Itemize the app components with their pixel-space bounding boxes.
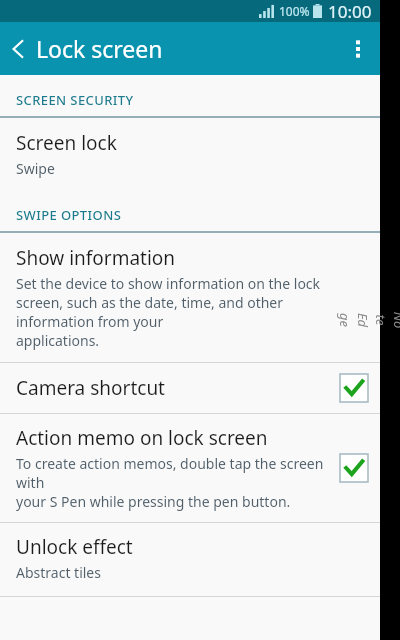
button[interactable]: Camera shortcut	[0, 363, 380, 413]
button[interactable]: Enabled	[340, 374, 368, 402]
staticText: Lock screen	[36, 33, 163, 64]
staticText: Swipe	[16, 159, 55, 178]
staticText: Abstract tiles	[16, 563, 101, 582]
staticText: Set the device to show information on th…	[16, 274, 364, 350]
staticText: Action memo on lock screen	[16, 425, 268, 451]
staticText: Screen lock	[16, 130, 117, 156]
staticText: Camera shortcut	[16, 375, 165, 401]
staticText: 10:00	[328, 0, 372, 22]
button[interactable]: More options	[336, 22, 380, 75]
button[interactable]: Navigate up	[0, 22, 36, 75]
button[interactable]: Show information	[0, 233, 380, 362]
button[interactable]: Unlock effect	[0, 523, 380, 596]
staticText: Unlock effect	[16, 534, 133, 560]
staticText: To create action memos, double tap the s…	[16, 454, 332, 511]
staticText: Show information	[16, 245, 176, 271]
button[interactable]: Screen lock	[0, 118, 380, 194]
staticText: SCREEN SECURITY	[16, 91, 134, 109]
staticText: Galaxy Note Edge	[336, 310, 400, 330]
staticText: 100%	[279, 3, 310, 19]
button[interactable]: Enabled	[340, 454, 368, 482]
button[interactable]: Navigate up	[0, 22, 380, 75]
button[interactable]: Action memo on lock screen	[0, 414, 380, 522]
staticText: SWIPE OPTIONS	[16, 206, 122, 224]
